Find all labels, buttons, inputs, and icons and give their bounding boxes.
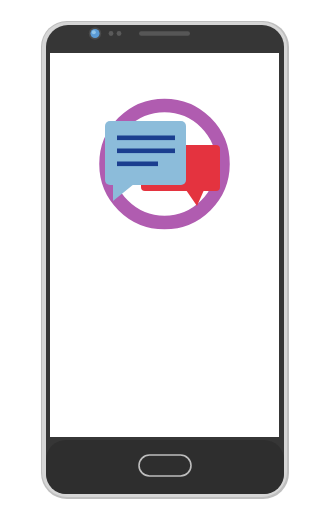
button[interactable]: Chat app splash screen on phone [0, 0, 327, 512]
